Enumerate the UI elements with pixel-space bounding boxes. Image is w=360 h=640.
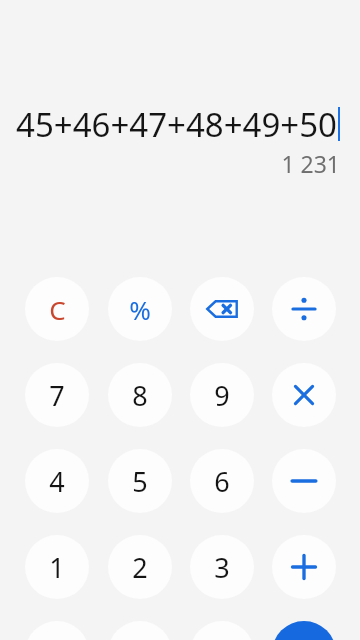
button[interactable]: History [25, 621, 89, 640]
staticText: C [49, 292, 66, 327]
button[interactable]: Minus [272, 449, 336, 513]
button[interactable]: 3 [190, 535, 254, 599]
button[interactable]: . [190, 621, 254, 640]
button[interactable]: 7 [25, 363, 89, 427]
button[interactable]: 4 [25, 449, 89, 513]
staticText: 6 [214, 463, 230, 500]
button[interactable]: 9 [190, 363, 254, 427]
button[interactable]: Backspace [190, 277, 254, 341]
button[interactable]: Multiply [272, 363, 336, 427]
button[interactable]: 2 [108, 535, 172, 599]
staticText: 45+46+47+48+49+50 [16, 102, 337, 147]
button[interactable]: Clear [25, 277, 89, 341]
button[interactable]: Plus [272, 535, 336, 599]
button[interactable]: 6 [190, 449, 254, 513]
staticText: % [129, 292, 151, 327]
button[interactable]: 1 [25, 535, 89, 599]
button[interactable]: Equals [272, 621, 336, 640]
staticText: 7 [49, 377, 65, 414]
button[interactable]: Divide [272, 277, 336, 341]
staticText: 3 [214, 549, 230, 586]
staticText: 1 [49, 549, 65, 586]
staticText: 8 [132, 377, 148, 414]
staticText: 2 [132, 549, 148, 586]
button[interactable]: 0 [108, 621, 172, 640]
staticText: 5 [132, 463, 148, 500]
staticText: 9 [214, 377, 230, 414]
button[interactable]: 5 [108, 449, 172, 513]
staticText: 4 [49, 463, 65, 500]
button[interactable]: Percent [108, 277, 172, 341]
button[interactable]: 8 [108, 363, 172, 427]
staticText: 1 231 [281, 148, 340, 179]
